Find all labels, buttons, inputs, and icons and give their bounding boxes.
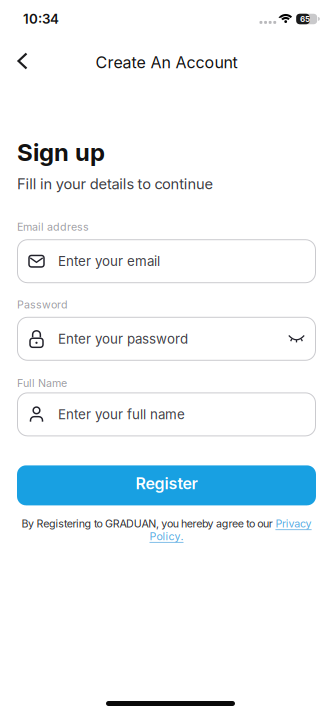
staticText: Create An Account	[95, 53, 237, 72]
button[interactable]: Privacy	[275, 517, 312, 530]
staticText: Enter your password	[58, 331, 188, 347]
button[interactable]: Policy.	[149, 530, 183, 543]
staticText: Password	[17, 298, 68, 311]
button[interactable]: Register	[17, 465, 316, 505]
staticText: Enter your full name	[58, 406, 185, 422]
button[interactable]: Enter your password	[17, 317, 316, 361]
staticText: Privacy	[275, 517, 312, 530]
staticText: Email address	[17, 221, 89, 233]
staticText: Register	[135, 474, 197, 493]
staticText: Policy.	[149, 530, 183, 543]
button[interactable]: Enter your email	[17, 239, 316, 283]
staticText: Full Name	[17, 377, 67, 389]
staticText: 65	[300, 14, 310, 24]
button[interactable]: Show password	[288, 326, 316, 351]
staticText: Sign up	[17, 138, 105, 166]
staticText: Fill in your details to continue	[17, 175, 214, 193]
staticText: 10:34	[23, 11, 59, 27]
staticText: By Registering to GRADUAN, you hereby ag…	[21, 517, 275, 530]
button[interactable]: Enter your full name	[17, 392, 316, 436]
button[interactable]: Back	[0, 38, 28, 83]
staticText: Enter your email	[58, 253, 160, 269]
